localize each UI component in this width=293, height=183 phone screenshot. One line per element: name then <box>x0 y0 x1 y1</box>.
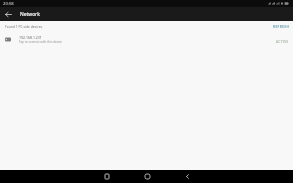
staticText: REFRESH <box>273 24 290 28</box>
button[interactable]: Back <box>179 170 195 183</box>
button[interactable]: Home <box>139 170 155 183</box>
button[interactable]: 192.168.1.231 <box>0 32 293 47</box>
staticText: Found 1 PC-side devices. <box>5 24 43 28</box>
staticText: Network <box>20 11 40 18</box>
staticText: 192.168.1.231 <box>19 35 42 40</box>
staticText: Tap to connect with this device <box>19 40 63 44</box>
button[interactable]: Recents <box>99 170 115 183</box>
button[interactable]: REFRESH <box>271 22 292 30</box>
button[interactable]: Back <box>0 7 17 21</box>
staticText: 20:58 <box>3 1 14 7</box>
staticText: ACTIVE <box>276 40 289 44</box>
